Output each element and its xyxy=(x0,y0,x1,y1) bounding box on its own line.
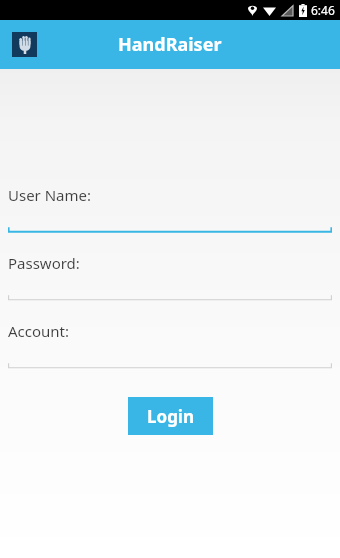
staticText: Login xyxy=(147,405,195,428)
button[interactable]: Account: xyxy=(8,321,340,341)
staticText: User Name: xyxy=(8,185,92,205)
staticText: Password: xyxy=(8,253,80,273)
staticText: Account: xyxy=(8,321,70,341)
staticText: HandRaiser xyxy=(118,32,222,57)
staticText: 6:46 xyxy=(311,2,335,18)
button[interactable]: User Name: xyxy=(8,185,340,205)
button[interactable]: Login xyxy=(128,397,213,435)
button[interactable]: Password: xyxy=(8,253,340,273)
button[interactable]: App icon xyxy=(12,32,37,57)
